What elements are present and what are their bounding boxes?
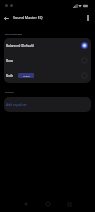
staticText: Active (23, 74, 30, 77)
button[interactable]: Home (42, 198, 54, 210)
staticText: Both (6, 74, 14, 78)
staticText: Add equalizer (6, 103, 27, 107)
button[interactable]: Both (4, 68, 91, 83)
staticText: Recommended (5, 32, 23, 35)
staticText: Bass (6, 59, 14, 63)
button[interactable]: Back (19, 198, 31, 210)
button[interactable]: Bass (4, 53, 91, 68)
staticText: Custom (5, 90, 14, 93)
staticText: Balanced (Default) (6, 44, 34, 48)
staticText: Sound Master EQ (13, 15, 43, 20)
button[interactable]: Balanced (Default) (4, 38, 91, 53)
button[interactable]: Navigate up (0, 12, 12, 24)
button[interactable]: Recent apps (63, 198, 75, 210)
button[interactable]: More options (83, 13, 93, 23)
button[interactable]: Add equalizer (4, 97, 91, 112)
